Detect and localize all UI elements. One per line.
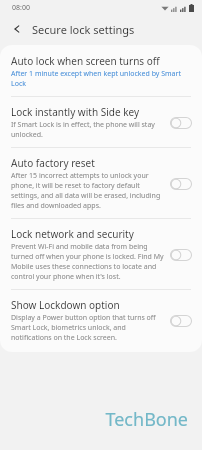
button[interactable]: Show Lockdown option — [0, 290, 202, 352]
staticText: 08:00 — [12, 3, 30, 13]
button[interactable]: Auto factory reset — [168, 176, 194, 192]
button[interactable]: Lock instantly with Side key — [168, 115, 194, 131]
staticText: Secure lock settings — [32, 22, 135, 37]
button[interactable]: Lock instantly with Side key — [0, 97, 202, 147]
button[interactable]: Back — [6, 18, 28, 40]
staticText: If Smart Lock is in effect, the phone wi… — [11, 120, 164, 140]
staticText: Auto factory reset — [11, 156, 95, 170]
staticText: TechBone — [105, 407, 188, 432]
button[interactable]: Auto factory reset — [0, 148, 202, 218]
staticText: Lock network and security — [11, 227, 134, 241]
staticText: Show Lockdown option — [11, 298, 120, 312]
staticText: After 15 incorrect attempts to unlock yo… — [11, 171, 164, 211]
staticText: Prevent Wi-Fi and mobile data from being… — [11, 242, 164, 282]
staticText: Lock instantly with Side key — [11, 105, 140, 119]
staticText: Auto lock when screen turns off — [11, 54, 160, 68]
button[interactable]: Auto lock when screen turns off — [0, 45, 202, 96]
button[interactable]: Show Lockdown option — [168, 313, 194, 329]
staticText: Display a Power button option that turns… — [11, 313, 164, 343]
staticText: After 1 minute except when kept unlocked… — [11, 69, 194, 89]
button[interactable]: Lock network and security — [0, 219, 202, 289]
button[interactable]: Lock network and security — [168, 247, 194, 263]
